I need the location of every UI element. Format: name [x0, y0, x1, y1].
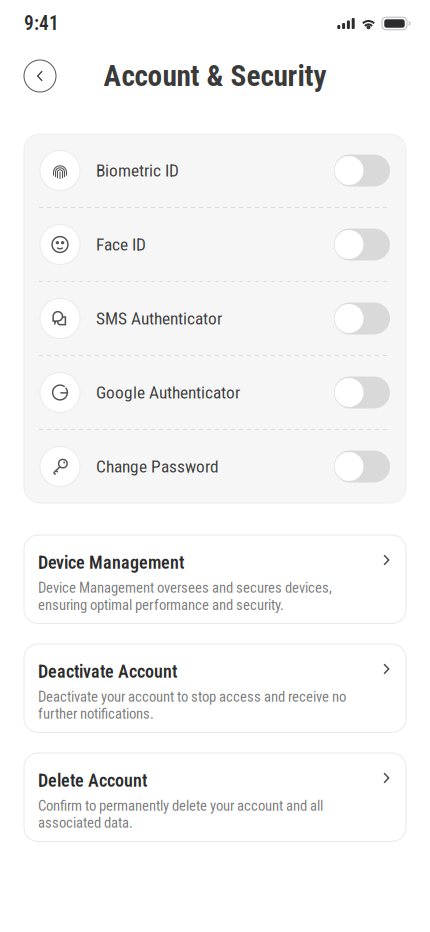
button[interactable]: Change Password: [24, 430, 406, 503]
staticText: Account & Security: [103, 59, 326, 93]
staticText: 9:41: [24, 12, 59, 35]
button[interactable]: SMS Authenticator: [24, 282, 406, 355]
button[interactable]: Biometric ID: [24, 134, 406, 207]
staticText: Biometric ID: [96, 160, 179, 181]
button[interactable]: Back: [24, 60, 56, 92]
staticText: Delete Account: [38, 770, 147, 791]
staticText: Face ID: [96, 234, 146, 255]
button[interactable]: Face ID: [24, 208, 406, 281]
button[interactable]: Google Authenticator: [24, 356, 406, 429]
staticText: SMS Authenticator: [96, 308, 222, 329]
staticText: Deactivate your account to stop access a…: [38, 688, 346, 722]
staticText: Confirm to permanently delete your accou…: [38, 797, 323, 831]
staticText: Device Management: [38, 552, 184, 573]
button[interactable]: Delete Account: [24, 753, 406, 841]
button[interactable]: Deactivate Account: [24, 644, 406, 732]
staticText: Google Authenticator: [96, 382, 240, 403]
button[interactable]: Device Management: [24, 535, 406, 623]
staticText: Device Management oversees and secures d…: [38, 579, 332, 613]
staticText: Deactivate Account: [38, 661, 177, 682]
staticText: Change Password: [96, 456, 219, 477]
